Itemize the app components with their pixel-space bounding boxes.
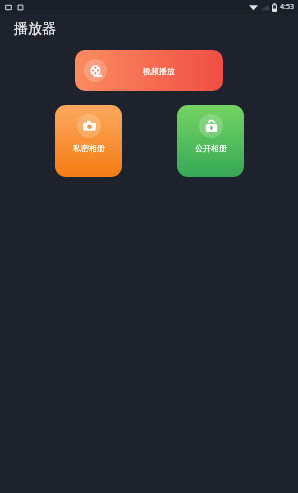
- other: 公开相册: [199, 114, 223, 138]
- button[interactable]: 视频播放: [75, 50, 223, 91]
- other: 视频播放: [90, 65, 102, 77]
- staticText: 视频播放: [143, 66, 175, 76]
- button[interactable]: 私密相册: [55, 105, 122, 177]
- staticText: 4:53: [280, 2, 294, 12]
- other: 私密相册: [77, 114, 101, 138]
- button[interactable]: 公开相册: [177, 105, 244, 177]
- staticText: 公开相册: [195, 143, 227, 153]
- staticText: 私密相册: [73, 143, 105, 153]
- staticText: 播放器: [14, 20, 56, 38]
